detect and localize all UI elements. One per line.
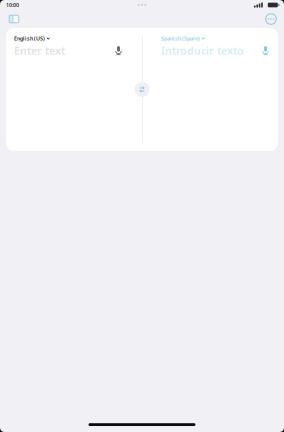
button[interactable]: Dictate bbox=[259, 44, 272, 57]
button[interactable]: Show Sidebar bbox=[5, 12, 23, 26]
button[interactable]: English (US) bbox=[14, 35, 50, 42]
button[interactable]: More options bbox=[262, 12, 280, 26]
button[interactable]: Swap languages bbox=[133, 80, 151, 98]
staticText: Introducir texto bbox=[161, 43, 244, 58]
staticText: Spanish (Spain) bbox=[161, 35, 200, 42]
staticText: Enter text bbox=[14, 43, 65, 58]
staticText: 10:00 bbox=[6, 1, 19, 9]
button[interactable]: Spanish (Spain) bbox=[161, 35, 205, 42]
button[interactable]: Dictate bbox=[112, 44, 125, 57]
staticText: English (US) bbox=[14, 35, 45, 42]
